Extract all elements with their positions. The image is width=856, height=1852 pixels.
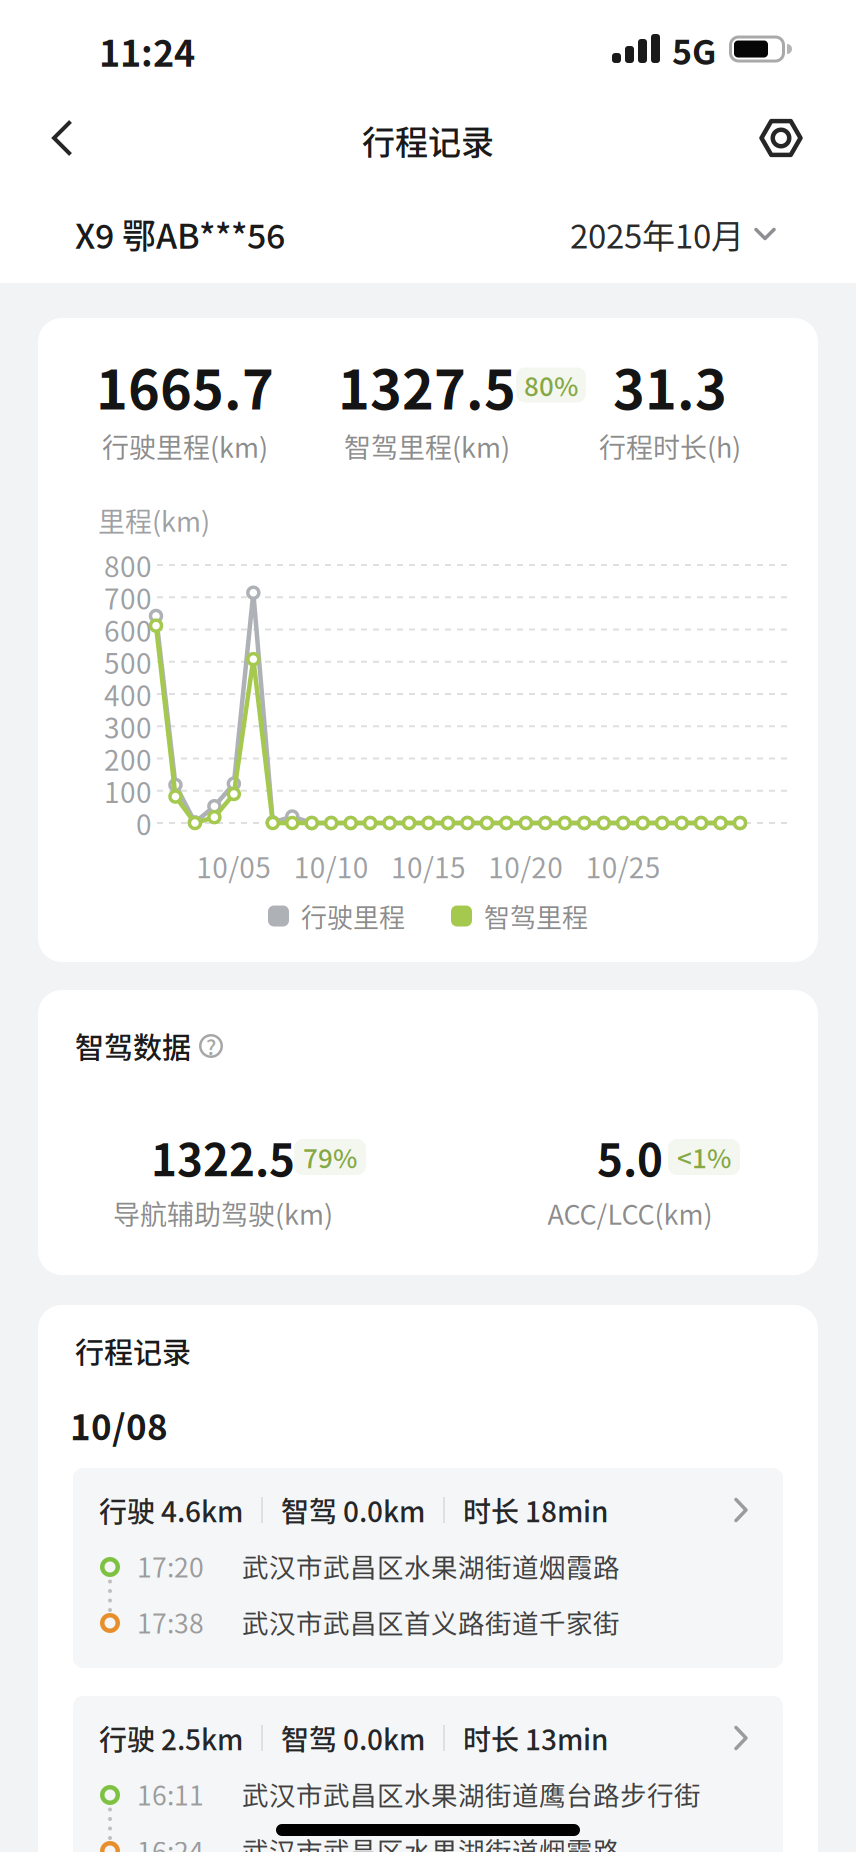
staticText: 0 [136, 803, 152, 843]
staticText: 17:38 [137, 1603, 204, 1641]
staticText: 700 [104, 577, 152, 617]
staticText: 10/10 [294, 846, 369, 886]
staticText: 智驾里程 [484, 897, 588, 935]
staticText: 武汉市武昌区水果湖街道烟霞路 [242, 1831, 620, 1852]
staticText: 武汉市武昌区首义路街道千家街 [242, 1603, 620, 1641]
staticText: 武汉市武昌区水果湖街道烟霞路 [242, 1547, 620, 1585]
staticText: <1% [677, 1138, 731, 1176]
staticText: 智驾 0.0km [281, 1490, 425, 1530]
staticText: 10/25 [586, 846, 661, 886]
staticText: 17:20 [137, 1547, 204, 1585]
staticText: 5.0 [597, 1125, 663, 1189]
staticText: 11:24 [99, 25, 195, 77]
staticText: 31.3 [613, 347, 727, 425]
staticText: 10/15 [391, 846, 466, 886]
staticText: 行程记录 [75, 1330, 191, 1372]
staticText: 800 [104, 545, 152, 585]
staticText: 智驾数据 [75, 1025, 191, 1067]
staticText: 5G [672, 25, 716, 75]
staticText: 100 [104, 770, 152, 811]
staticText: ACC/LCC(km) [547, 1193, 712, 1233]
staticText: 300 [104, 706, 152, 746]
staticText: 导航辅助驾驶(km) [113, 1193, 333, 1233]
staticText: 16:11 [137, 1775, 204, 1813]
button[interactable]: 行驶 4.6km [73, 1468, 783, 1668]
staticText: 行程时长(h) [599, 426, 741, 466]
staticText: 2025年10月 [570, 210, 744, 258]
staticText: 80% [524, 366, 578, 404]
button[interactable]: 设置 [760, 117, 802, 159]
staticText: 600 [104, 609, 152, 650]
staticText: 里程(km) [98, 500, 210, 540]
staticText: 10/05 [196, 846, 271, 886]
staticText: 16:24 [137, 1831, 204, 1852]
staticText: 武汉市武昌区水果湖街道鹰台路步行街 [242, 1775, 701, 1813]
button[interactable]: X9 鄂AB***56 [75, 209, 285, 259]
button[interactable]: 行驶 2.5km [73, 1696, 783, 1852]
staticText: 1665.7 [96, 347, 274, 425]
staticText: 10/08 [70, 1400, 168, 1450]
staticText: 200 [104, 738, 152, 779]
staticText: 行驶里程 [301, 897, 405, 935]
staticText: 智驾里程(km) [344, 426, 510, 466]
button[interactable]: 返回 [51, 118, 75, 157]
staticText: 行驶 2.5km [99, 1718, 243, 1758]
button[interactable]: 帮助 [199, 1031, 223, 1061]
staticText: 1327.5 [338, 347, 516, 425]
staticText: 500 [104, 641, 152, 682]
staticText: 1322.5 [151, 1125, 295, 1189]
staticText: 行驶 4.6km [99, 1490, 243, 1530]
staticText: 行程记录 [362, 116, 494, 164]
staticText: 行驶里程(km) [102, 426, 268, 466]
staticText: 400 [104, 674, 152, 714]
staticText: 时长 13min [463, 1718, 608, 1758]
staticText: 智驾 0.0km [281, 1718, 425, 1758]
staticText: 时长 18min [463, 1490, 608, 1530]
button[interactable]: 2025年10月 [570, 210, 776, 258]
staticText: X9 鄂AB***56 [75, 209, 285, 259]
staticText: ? [206, 1031, 216, 1061]
staticText: 10/20 [488, 846, 563, 886]
staticText: 79% [303, 1138, 357, 1176]
